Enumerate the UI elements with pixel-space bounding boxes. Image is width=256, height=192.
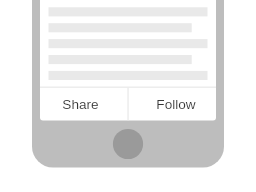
staticText: Share xyxy=(62,97,99,112)
button[interactable]: Home xyxy=(113,129,143,159)
staticText: Follow xyxy=(156,97,196,112)
button[interactable]: Follow xyxy=(128,88,216,121)
button[interactable]: Share xyxy=(40,88,128,121)
